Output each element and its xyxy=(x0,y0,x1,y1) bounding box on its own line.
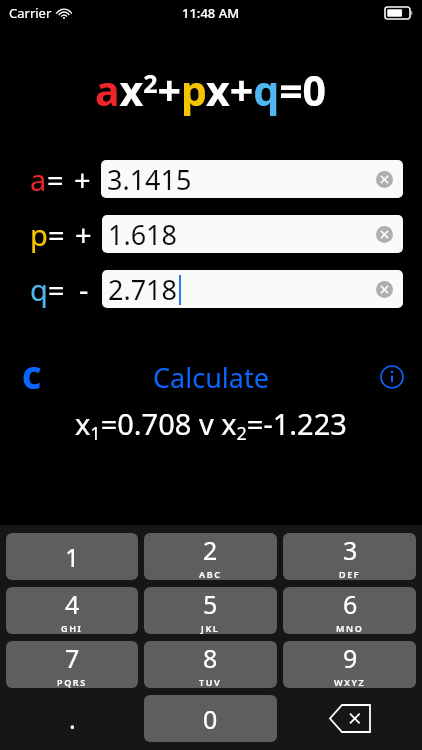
staticText: 2.718 xyxy=(108,271,178,308)
staticText: 11:48 AM xyxy=(182,4,240,22)
staticText: Calculate xyxy=(153,359,269,396)
button[interactable]: 3 xyxy=(283,533,416,580)
staticText: 1 xyxy=(65,540,80,574)
staticText: JKL xyxy=(201,622,220,634)
button[interactable]: 9 xyxy=(283,641,416,688)
staticText: = xyxy=(48,215,65,253)
button[interactable]: 0 xyxy=(144,695,277,742)
staticText: C xyxy=(22,357,42,398)
staticText: x1=0.708 v x2=-1.223 xyxy=(75,404,347,446)
staticText: Carrier xyxy=(9,4,52,22)
staticText: 5 xyxy=(203,587,218,621)
staticText: q xyxy=(30,270,48,308)
button[interactable]: 8 xyxy=(144,641,277,688)
staticText: 9 xyxy=(343,641,358,675)
staticText: 8 xyxy=(203,641,218,675)
button[interactable]: 1.618 xyxy=(102,215,403,253)
staticText: PQRS xyxy=(57,676,87,688)
staticText: ax2+px+q=0 xyxy=(95,62,327,118)
staticText: 3.1415 xyxy=(107,161,192,198)
staticText: WXYZ xyxy=(334,676,366,688)
button[interactable]: 6 xyxy=(283,587,416,634)
button[interactable]: Clear text xyxy=(376,281,393,298)
staticText: = xyxy=(48,270,65,308)
button[interactable]: + xyxy=(75,215,92,253)
staticText: 6 xyxy=(343,587,358,621)
staticText: MNO xyxy=(336,622,364,634)
staticText: = xyxy=(47,160,64,198)
staticText: 4 xyxy=(65,587,80,621)
staticText: ABC xyxy=(199,568,222,580)
staticText: 1.618 xyxy=(108,216,178,253)
staticText: 3 xyxy=(343,533,358,567)
staticText: GHI xyxy=(61,622,83,634)
button[interactable]: Info xyxy=(380,365,404,389)
staticText: a xyxy=(30,160,47,198)
button[interactable]: Calculate xyxy=(153,359,269,396)
button[interactable]: Clear all xyxy=(22,357,42,398)
staticText: . xyxy=(69,702,76,736)
staticText: 0 xyxy=(203,702,218,736)
button[interactable]: 2 xyxy=(144,533,277,580)
button[interactable]: 5 xyxy=(144,587,277,634)
button[interactable]: . xyxy=(6,695,138,742)
staticText: 2 xyxy=(203,533,218,567)
button[interactable]: 4 xyxy=(6,587,138,634)
button[interactable]: 3.1415 xyxy=(101,160,403,198)
button[interactable]: - xyxy=(79,270,89,308)
staticText: p xyxy=(30,215,48,253)
button[interactable]: + xyxy=(74,160,91,198)
button[interactable]: 7 xyxy=(6,641,138,688)
button[interactable]: Clear text xyxy=(376,171,393,188)
staticText: 7 xyxy=(65,641,80,675)
button[interactable]: 2.718 xyxy=(102,270,403,308)
staticText: TUV xyxy=(199,676,222,688)
staticText: DEF xyxy=(339,568,361,580)
button[interactable]: Clear text xyxy=(376,226,393,243)
button[interactable]: Backspace xyxy=(283,695,416,742)
button[interactable]: 1 xyxy=(6,533,138,580)
